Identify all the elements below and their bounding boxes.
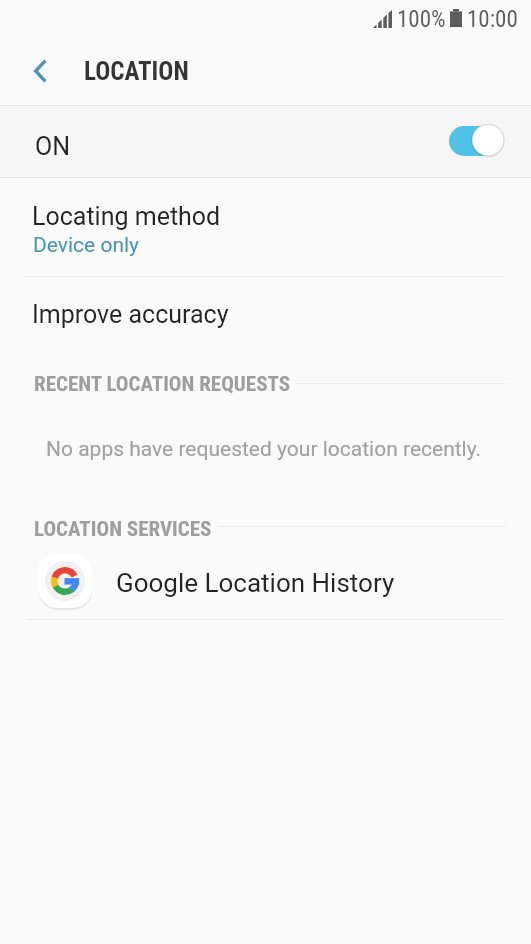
staticText: 10:00 bbox=[467, 6, 518, 33]
staticText: Improve accuracy bbox=[32, 300, 229, 329]
staticText: Google Location History bbox=[116, 568, 395, 598]
staticText: 100% bbox=[397, 6, 446, 33]
button[interactable]: ON bbox=[0, 106, 531, 177]
staticText: Locating method bbox=[32, 202, 221, 231]
staticText: RECENT LOCATION REQUESTS bbox=[34, 372, 291, 397]
staticText: No apps have requested your location rec… bbox=[46, 437, 482, 462]
button[interactable]: Improve accuracy bbox=[0, 277, 531, 350]
button[interactable]: Google Location History bbox=[0, 548, 531, 619]
staticText: Device only bbox=[33, 233, 140, 258]
staticText: LOCATION bbox=[84, 57, 189, 86]
staticText: LOCATION SERVICES bbox=[34, 517, 212, 542]
button[interactable]: Navigate up bbox=[0, 34, 72, 105]
button[interactable]: Locating method bbox=[0, 178, 531, 276]
staticText: ON bbox=[35, 132, 71, 161]
